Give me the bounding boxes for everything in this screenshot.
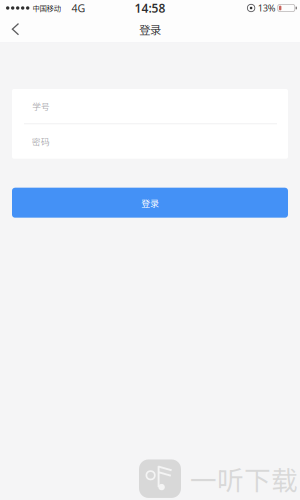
- button[interactable]: 登录: [12, 188, 288, 218]
- button[interactable]: 密码输入框: [12, 124, 288, 159]
- staticText: 一听下载: [190, 459, 298, 498]
- staticText: 中国移动: [32, 3, 60, 13]
- staticText: 13%: [258, 2, 276, 14]
- button[interactable]: 返回: [0, 16, 31, 42]
- staticText: 14:58: [134, 0, 165, 16]
- staticText: 登录: [139, 21, 161, 37]
- button[interactable]: 学号输入框: [12, 89, 288, 123]
- staticText: 登录: [141, 196, 159, 209]
- staticText: 学号: [32, 100, 50, 112]
- staticText: 4G: [71, 1, 85, 15]
- staticText: 密码: [32, 135, 50, 148]
